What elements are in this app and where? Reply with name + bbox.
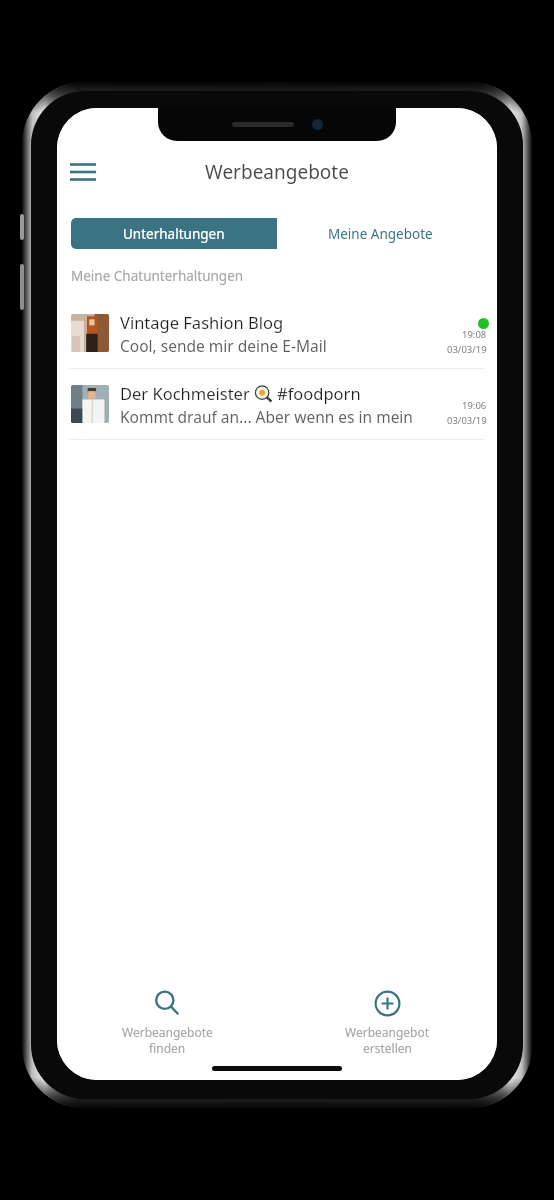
button[interactable]: Meine Angebote <box>277 218 483 249</box>
staticText: Der Kochmeister <box>120 382 250 404</box>
staticText: Unterhaltungen <box>123 225 225 243</box>
staticText: 19:06 <box>462 399 487 412</box>
button[interactable]: Vintage Fashion Blog <box>57 298 497 368</box>
button[interactable]: Menu <box>61 150 105 194</box>
staticText: #foodporn <box>277 382 361 404</box>
staticText: erstellen <box>363 1040 412 1056</box>
staticText: Werbeangebote <box>205 159 349 185</box>
staticText: 03/03/19 <box>447 414 487 427</box>
button[interactable]: Unterhaltungen <box>71 218 277 249</box>
button[interactable]: Werbeangebot erstellen <box>277 978 497 1066</box>
staticText: Werbeangebot <box>345 1024 430 1040</box>
staticText: Meine Angebote <box>328 225 433 243</box>
staticText: Cool, sende mir deine E-Mail <box>120 335 327 356</box>
staticText: 03/03/19 <box>447 343 487 356</box>
button[interactable]: Der Kochmeister <box>57 369 497 439</box>
staticText: Vintage Fashion Blog <box>120 311 284 333</box>
staticText: Kommt drauf an... Aber wenn es in mein <box>120 406 413 427</box>
staticText: finden <box>149 1040 186 1056</box>
staticText: Meine Chatunterhaltungen <box>71 267 244 285</box>
button[interactable]: Werbeangebote finden <box>57 978 277 1066</box>
staticText: 19:08 <box>462 328 487 341</box>
staticText: Werbeangebote <box>122 1024 213 1040</box>
